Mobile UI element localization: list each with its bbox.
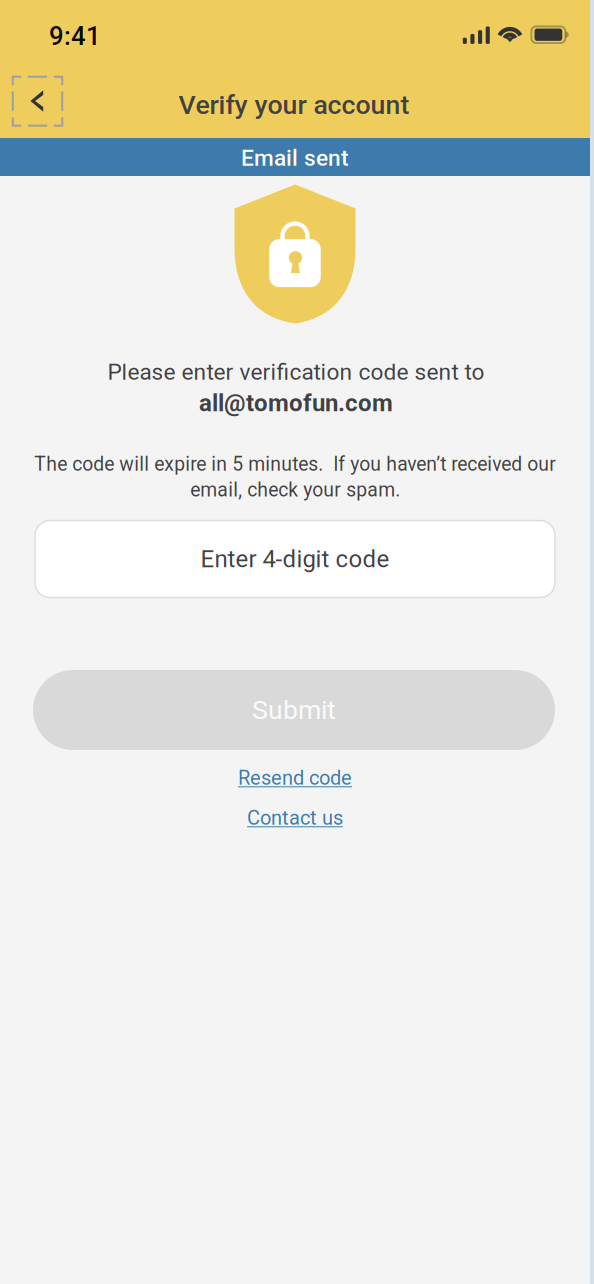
staticText: Enter 4-digit code — [200, 545, 389, 573]
button[interactable]: Submit — [33, 670, 555, 750]
staticText: Please enter verification code sent to — [107, 359, 484, 385]
staticText: Email sent — [241, 145, 349, 171]
button[interactable]: Enter 4-digit code — [35, 520, 555, 597]
staticText: Verify your account — [178, 89, 409, 121]
staticText: Submit — [252, 694, 336, 726]
button[interactable]: Contact us — [230, 801, 360, 835]
staticText: 9:41 — [49, 21, 101, 51]
staticText: The code will expire in 5 minutes. If yo… — [34, 453, 556, 501]
staticText: Resend code — [238, 766, 352, 790]
button[interactable]: Back — [9, 73, 65, 129]
staticText: all@tomofun.com — [199, 389, 393, 417]
staticText: Contact us — [247, 806, 343, 830]
button[interactable]: Resend code — [225, 761, 365, 795]
